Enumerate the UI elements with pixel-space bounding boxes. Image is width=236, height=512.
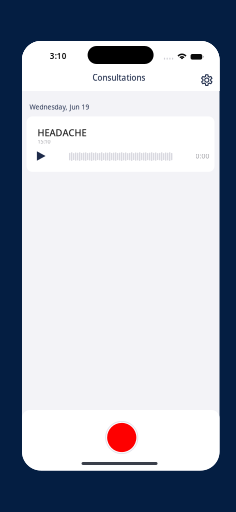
staticText: Consultations [92,72,145,83]
staticText: 15:10 [37,138,50,145]
staticText: Wednesday, Jun 19 [29,102,89,111]
button[interactable]: Record [104,419,140,455]
staticText: HEADACHE [37,126,86,139]
button[interactable]: HEADACHE [26,116,214,172]
staticText: 3:10 [50,51,67,61]
staticText: 0:00 [195,152,209,160]
button[interactable]: Settings [198,71,216,89]
